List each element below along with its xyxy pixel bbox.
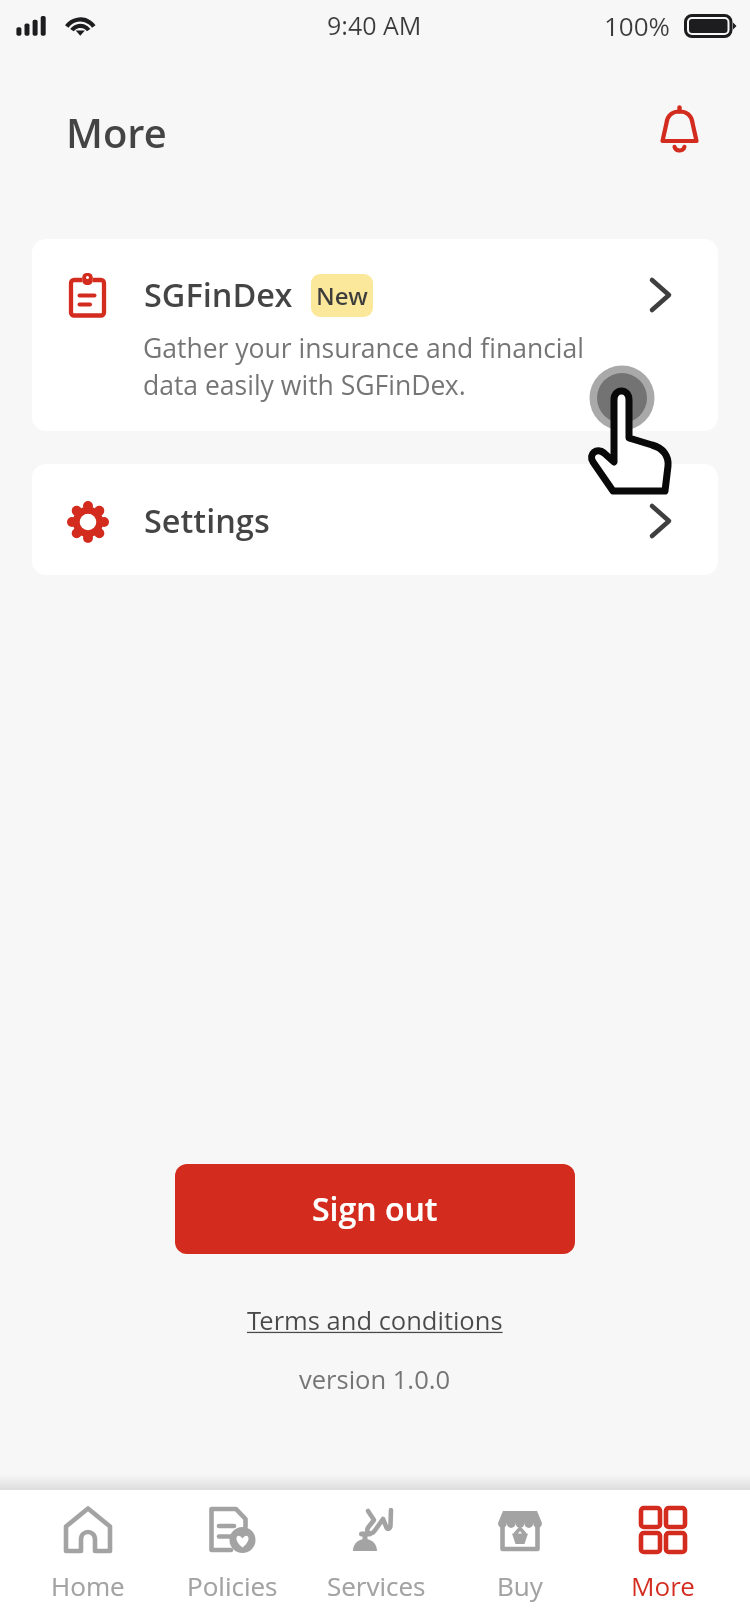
button[interactable]: Policies [160,1490,304,1624]
staticText: 9:40 AM [327,8,422,42]
staticText: Terms and conditions [247,1303,503,1338]
staticText: Home [51,1568,125,1603]
button[interactable]: Services [304,1490,448,1624]
staticText: SGFinDex [144,272,293,316]
staticText: version 1.0.0 [299,1362,451,1397]
staticText: Services [327,1568,426,1603]
staticText: Sign out [312,1187,438,1231]
staticText: Buy [497,1568,543,1603]
button[interactable]: Settings [32,464,718,575]
staticText: Settings [144,498,270,542]
staticText: New [316,279,368,312]
staticText: 100% [604,8,671,43]
staticText: More [66,105,167,159]
staticText: Policies [187,1568,278,1603]
staticText: Gather your insurance and financial data… [143,330,584,403]
button[interactable]: More [592,1490,734,1624]
button[interactable]: Sign out [175,1164,575,1254]
button[interactable]: SGFinDex [32,239,718,431]
button[interactable]: Buy [448,1490,592,1624]
staticText: More [631,1568,695,1603]
button[interactable]: Terms and conditions [237,1298,513,1342]
button[interactable]: Notifications [652,101,706,155]
button[interactable]: Home [16,1490,160,1624]
